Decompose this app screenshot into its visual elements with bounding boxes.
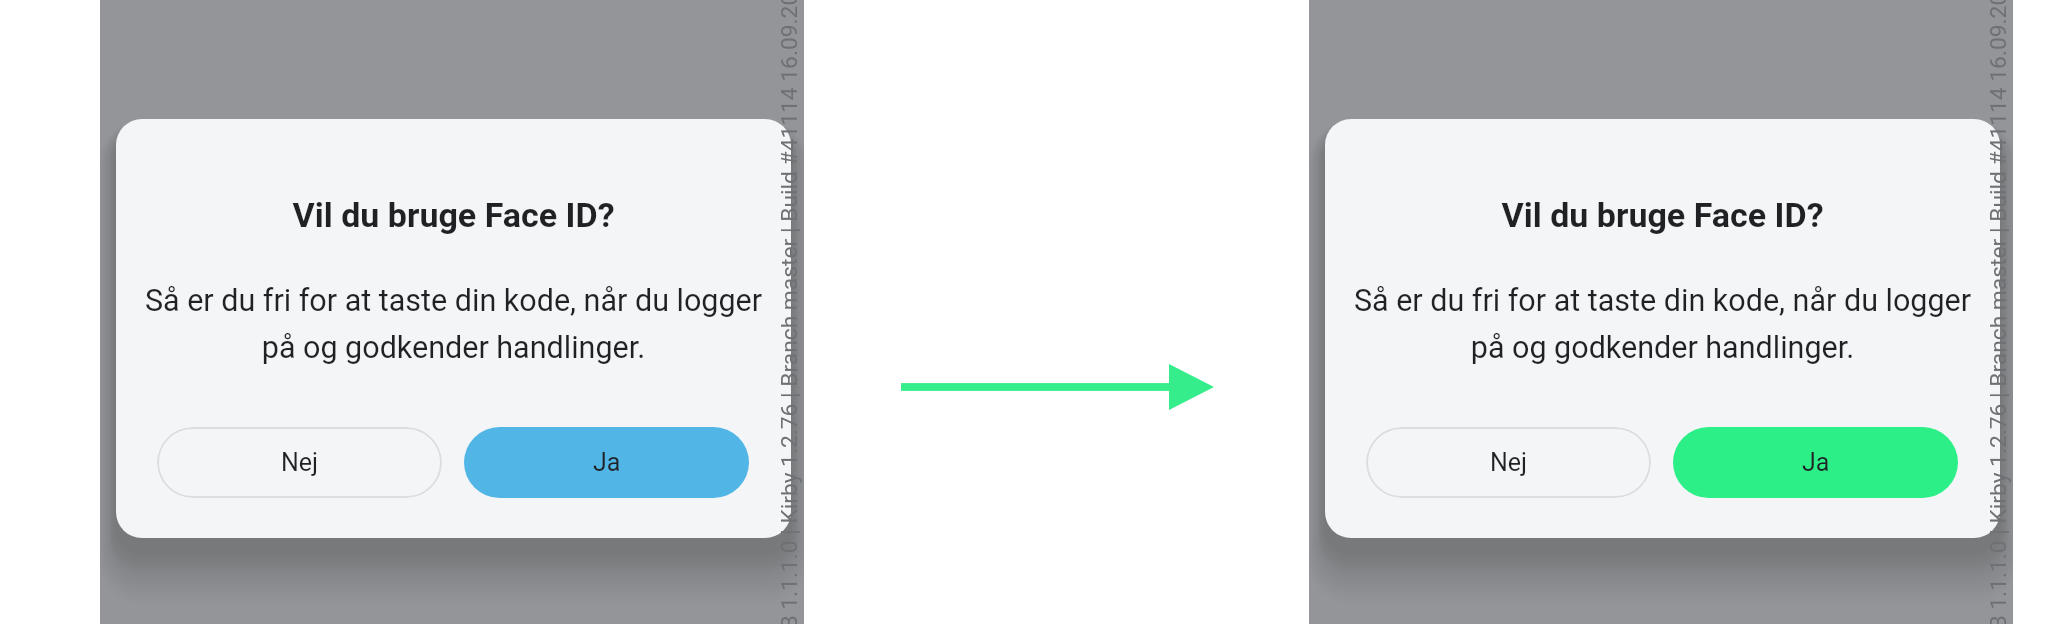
other: Changes to [901,363,1214,411]
staticText: Ja [1802,448,1830,477]
staticText: Vil du bruge Face ID? [1325,195,2000,235]
staticText: Ja [593,448,621,477]
staticText: Vil du bruge Face ID? [116,195,791,235]
staticText: Nej [1490,448,1528,477]
staticText: Så er du fri for at taste din kode, når … [116,283,791,366]
staticText: Nej [281,448,319,477]
other: Build information: green theme [1984,0,2013,624]
staticText: Så er du fri for at taste din kode, når … [1325,283,2000,366]
staticText: B 1.1.1.0 | Kirby 1.2.76 | Branch master… [775,0,802,624]
button[interactable]: Nej [157,427,442,498]
button[interactable]: Ja [1673,427,1958,498]
other: Build information: blue theme [775,0,804,624]
button[interactable]: Nej [1366,427,1651,498]
staticText: B 1.1.1.0 | Kirby 1.2.76 | Branch master… [1984,0,2011,624]
button[interactable]: Ja [464,427,749,498]
